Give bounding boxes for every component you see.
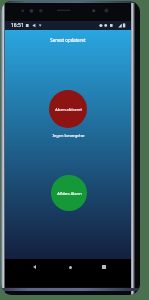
staticText: Ingen bevægelse	[52, 133, 85, 138]
staticText: Afblæs Alarm	[57, 191, 82, 196]
button[interactable]: Home	[63, 260, 77, 274]
staticText: Alarm aktiveret	[55, 107, 82, 112]
button[interactable]: Afblæs Alarm	[51, 175, 87, 211]
button[interactable]: Recent apps	[97, 260, 111, 274]
staticText: 16:51	[11, 22, 24, 29]
button[interactable]: Alarm aktiveret	[49, 90, 87, 128]
staticText: Senest opdateret	[50, 37, 86, 43]
button[interactable]: Back	[27, 260, 41, 274]
